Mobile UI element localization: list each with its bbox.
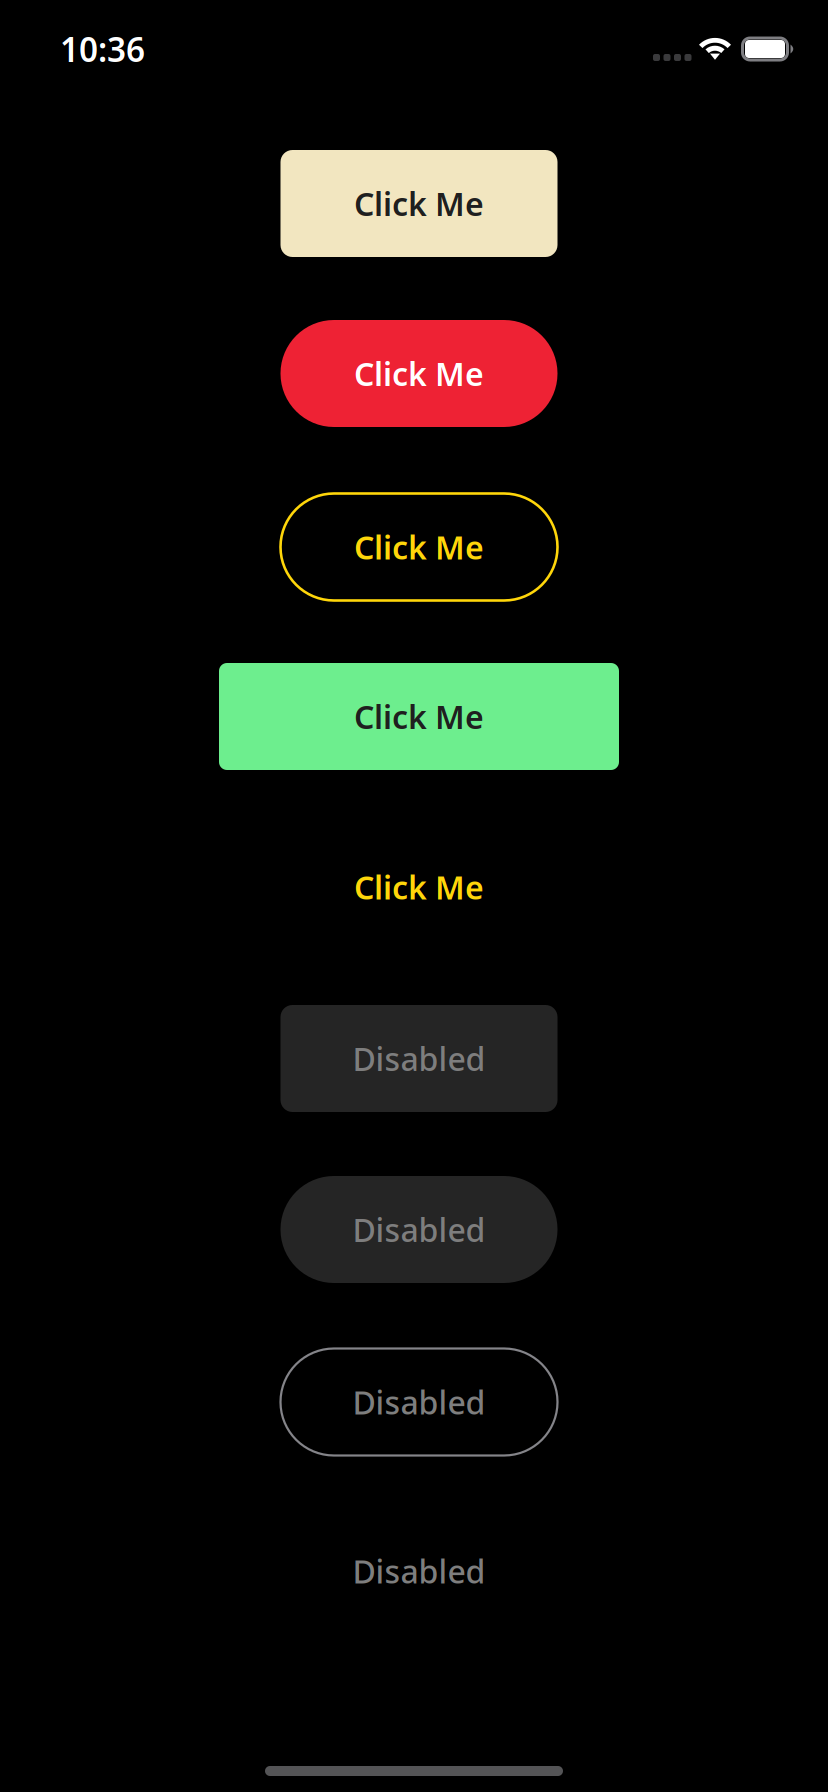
staticText: Disabled <box>352 1381 485 1423</box>
button[interactable]: Click Me <box>280 150 557 257</box>
staticText: Click Me <box>354 695 484 738</box>
button[interactable]: Click Me <box>280 862 557 912</box>
staticText: Click Me <box>354 526 484 568</box>
staticText: 10:36 <box>60 27 145 71</box>
staticText: Disabled <box>352 1208 485 1251</box>
button[interactable]: Click Me <box>219 663 619 770</box>
button[interactable]: Click Me <box>280 320 557 427</box>
staticText: Disabled <box>352 1550 485 1592</box>
button[interactable]: Disabled <box>280 1176 557 1283</box>
button[interactable]: Disabled <box>280 1005 557 1112</box>
staticText: Click Me <box>354 352 484 395</box>
button[interactable]: Disabled <box>280 1348 557 1455</box>
button[interactable]: Disabled <box>280 1546 557 1596</box>
staticText: Click Me <box>354 182 484 225</box>
staticText: Click Me <box>354 866 484 908</box>
button[interactable]: Click Me <box>280 493 557 600</box>
staticText: Disabled <box>352 1037 485 1080</box>
